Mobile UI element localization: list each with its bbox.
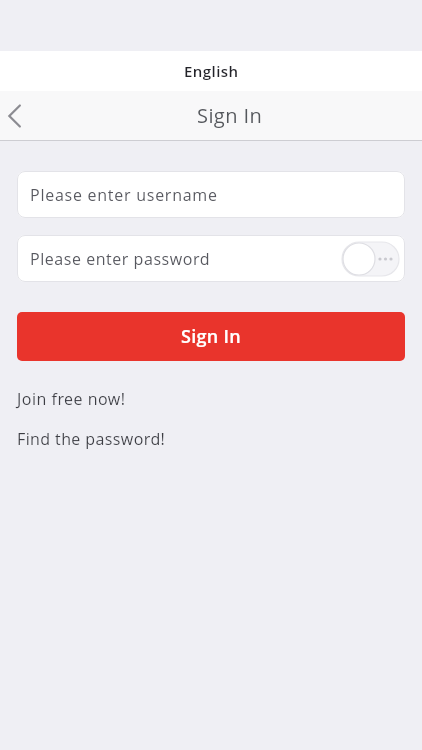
staticText: Please enter password <box>30 248 211 270</box>
staticText: English <box>184 61 239 81</box>
button[interactable]: English <box>0 51 422 91</box>
staticText: Sign In <box>181 324 242 349</box>
button[interactable]: Please enter password <box>17 235 405 282</box>
staticText: Sign In <box>197 102 263 129</box>
staticText: Please enter username <box>30 184 218 206</box>
button[interactable] <box>0 99 34 133</box>
button[interactable]: Please enter username <box>17 171 405 218</box>
button[interactable] <box>342 242 399 276</box>
button[interactable]: Find the password! <box>17 428 166 450</box>
button[interactable]: Join free now! <box>17 388 126 410</box>
button[interactable]: Sign In <box>17 312 405 361</box>
